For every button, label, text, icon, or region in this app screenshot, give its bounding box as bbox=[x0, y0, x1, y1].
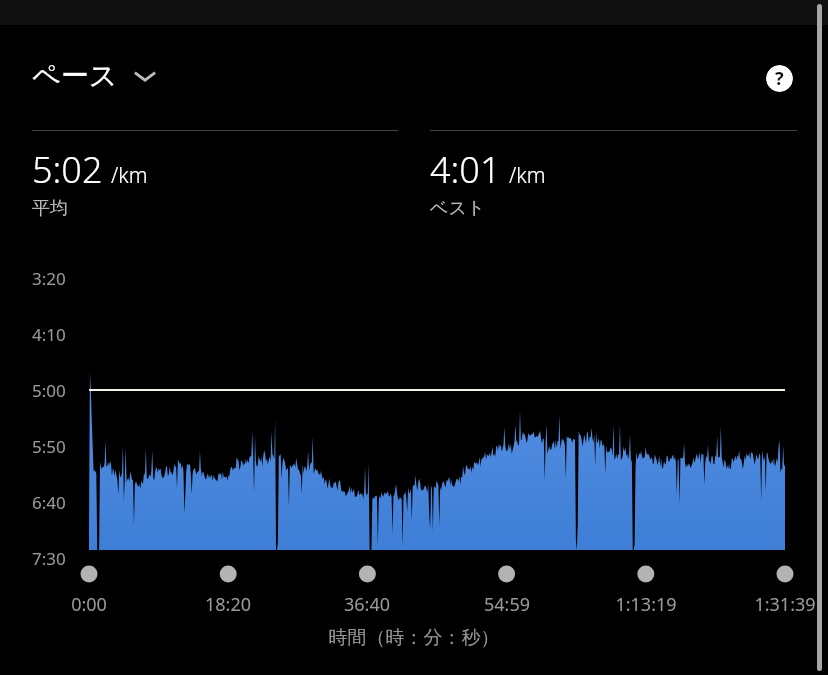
staticText: 1:31:39 bbox=[725, 592, 828, 617]
staticText: 5:00 bbox=[32, 379, 66, 402]
staticText: 5:50 bbox=[32, 435, 66, 458]
staticText: 18:20 bbox=[168, 592, 288, 617]
staticText: 5:02 bbox=[32, 145, 103, 194]
staticText: 0:00 bbox=[29, 592, 149, 617]
staticText: 4:10 bbox=[32, 323, 66, 346]
staticText: ベスト bbox=[430, 197, 486, 220]
staticText: 3:20 bbox=[32, 267, 66, 290]
staticText: 7:30 bbox=[32, 547, 66, 570]
button[interactable]: ペース bbox=[26, 54, 162, 97]
button[interactable]: ヘルプ bbox=[766, 65, 793, 92]
staticText: /km bbox=[111, 161, 148, 190]
staticText: 4:01 bbox=[430, 145, 501, 194]
staticText: 6:40 bbox=[32, 491, 66, 514]
staticText: 36:40 bbox=[307, 592, 427, 617]
staticText: 54:59 bbox=[447, 592, 567, 617]
staticText: ? bbox=[775, 66, 784, 91]
staticText: 時間（時：分：秒） bbox=[0, 626, 828, 650]
staticText: 1:13:19 bbox=[586, 592, 706, 617]
staticText: 平均 bbox=[32, 197, 68, 220]
staticText: ペース bbox=[32, 58, 118, 93]
staticText: /km bbox=[509, 161, 546, 190]
